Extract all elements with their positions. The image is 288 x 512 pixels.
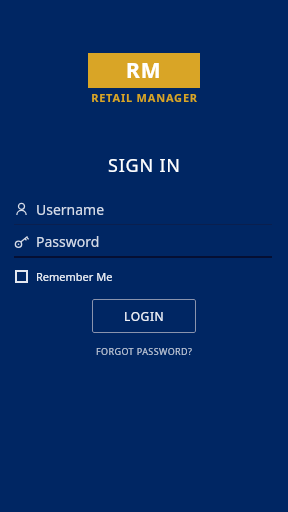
staticText: Password bbox=[36, 232, 100, 251]
staticText: LOGIN bbox=[124, 308, 165, 324]
staticText: SIGN IN bbox=[108, 153, 181, 178]
staticText: Username bbox=[36, 200, 105, 219]
staticText: RM bbox=[126, 56, 162, 85]
button[interactable]: FORGOT PASSWORD? bbox=[90, 343, 199, 359]
button[interactable]: Password bbox=[14, 232, 272, 258]
button[interactable]: Username bbox=[14, 200, 272, 225]
other: Password bbox=[14, 234, 29, 249]
other: Username bbox=[14, 202, 29, 217]
staticText: Remember Me bbox=[36, 269, 113, 284]
staticText: FORGOT PASSWORD? bbox=[96, 345, 193, 357]
staticText: RETAIL MANAGER bbox=[91, 90, 198, 105]
button[interactable]: Remember Me bbox=[13, 267, 115, 286]
button[interactable]: LOGIN bbox=[92, 299, 196, 333]
